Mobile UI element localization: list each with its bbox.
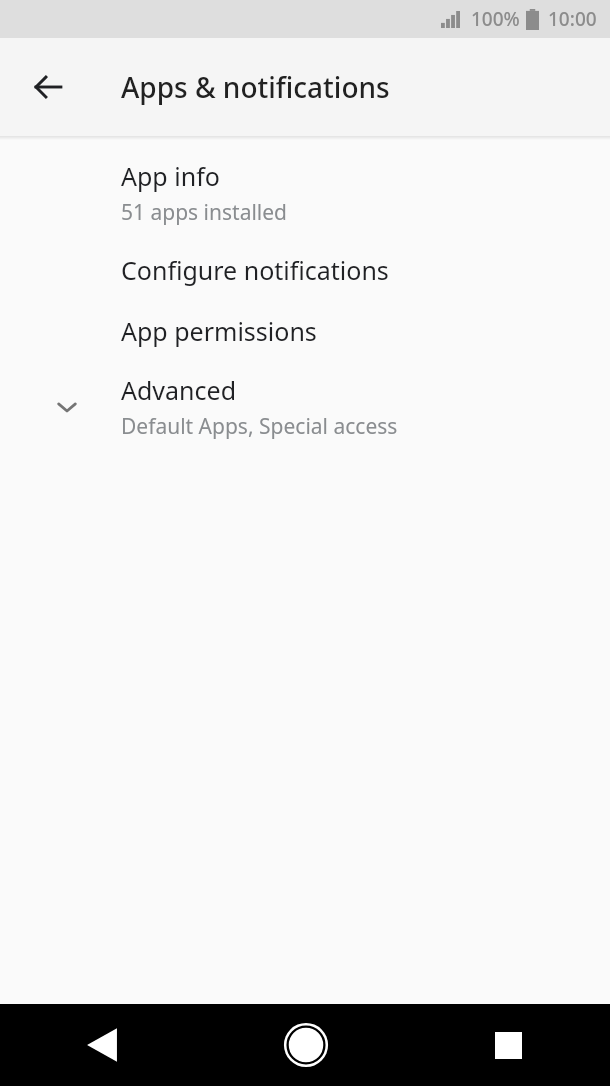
- staticText: App info: [121, 159, 220, 193]
- button[interactable]: App info: [0, 159, 610, 227]
- button[interactable]: Back: [20, 59, 76, 115]
- button[interactable]: Back: [0, 1004, 204, 1086]
- staticText: Default Apps, Special access: [121, 412, 398, 441]
- button[interactable]: Recent apps: [407, 1004, 610, 1086]
- button[interactable]: App permissions: [0, 314, 610, 348]
- staticText: Configure notifications: [121, 253, 389, 287]
- button[interactable]: Advanced: [0, 373, 610, 441]
- button[interactable]: Configure notifications: [0, 253, 610, 287]
- staticText: Advanced: [121, 373, 237, 407]
- staticText: App permissions: [121, 314, 317, 348]
- button[interactable]: Home: [204, 1004, 407, 1086]
- staticText: Apps & notifications: [121, 68, 390, 106]
- staticText: 51 apps installed: [121, 198, 288, 227]
- staticText: 100%: [471, 6, 520, 32]
- staticText: 10:00: [548, 6, 597, 32]
